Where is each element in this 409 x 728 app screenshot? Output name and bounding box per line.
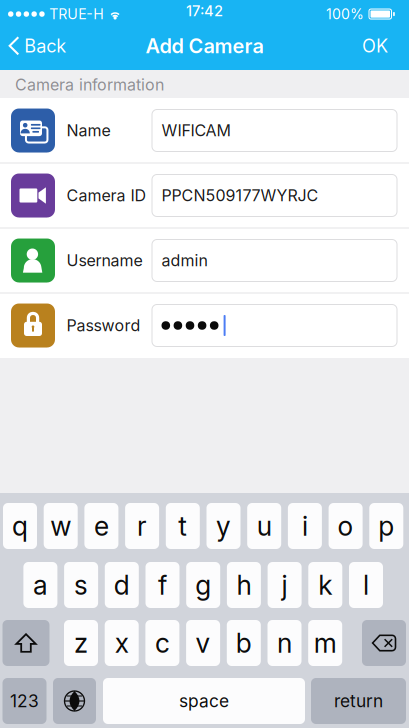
- staticText: h: [236, 569, 251, 601]
- staticText: 100%: [326, 5, 364, 23]
- staticText: m: [314, 627, 337, 659]
- staticText: return: [334, 690, 383, 711]
- staticText: r: [137, 510, 147, 542]
- button[interactable]: y: [206, 503, 240, 549]
- staticText: e: [94, 510, 109, 542]
- staticText: k: [318, 569, 332, 601]
- button[interactable]: m: [308, 620, 342, 666]
- button[interactable]: q: [3, 503, 37, 549]
- button[interactable]: g: [186, 562, 220, 608]
- staticText: 123: [10, 690, 39, 711]
- button[interactable]: t: [166, 503, 200, 549]
- button[interactable]: p: [369, 503, 403, 549]
- button[interactable]: return: [311, 678, 406, 724]
- button[interactable]: o: [329, 503, 363, 549]
- staticText: i: [302, 510, 308, 542]
- staticText: OK: [362, 35, 388, 57]
- staticText: w: [50, 510, 71, 542]
- staticText: d: [114, 569, 130, 601]
- button[interactable]: b: [227, 620, 261, 666]
- button[interactable]: WIFICAM: [0, 98, 409, 163]
- staticText: u: [257, 510, 272, 542]
- staticText: admin: [161, 251, 207, 270]
- staticText: 17:42: [186, 2, 223, 20]
- button[interactable]: s: [64, 562, 98, 608]
- staticText: n: [277, 627, 292, 659]
- staticText: y: [216, 510, 231, 542]
- button[interactable]: l: [349, 562, 383, 608]
- staticText: q: [12, 510, 28, 542]
- staticText: WIFICAM: [161, 121, 230, 140]
- staticText: l: [363, 569, 369, 601]
- button[interactable]: c: [145, 620, 179, 666]
- staticText: Back: [24, 35, 66, 57]
- button[interactable]: Password: [0, 293, 409, 358]
- button[interactable]: k: [308, 562, 342, 608]
- staticText: Camera ID: [66, 186, 146, 205]
- button[interactable]: space: [103, 678, 305, 724]
- staticText: b: [236, 627, 252, 659]
- button[interactable]: Shift: [2, 620, 49, 666]
- button[interactable]: Delete: [362, 620, 406, 666]
- staticText: Username: [66, 251, 142, 270]
- button[interactable]: h: [227, 562, 261, 608]
- staticText: Add Camera: [145, 34, 263, 58]
- button[interactable]: f: [145, 562, 179, 608]
- button[interactable]: r: [125, 503, 159, 549]
- button[interactable]: d: [105, 562, 139, 608]
- staticText: s: [74, 569, 88, 601]
- staticText: TRUE-H: [49, 5, 104, 23]
- button[interactable]: x: [105, 620, 139, 666]
- staticText: f: [158, 569, 167, 601]
- button[interactable]: Back: [0, 22, 74, 70]
- staticText: z: [74, 627, 88, 659]
- staticText: space: [179, 690, 229, 711]
- staticText: Camera information: [15, 75, 164, 94]
- button[interactable]: PPCN509177WYRJC: [0, 163, 409, 228]
- staticText: PPCN509177WYRJC: [161, 186, 318, 205]
- button[interactable]: i: [288, 503, 322, 549]
- button[interactable]: Next keyboard: [53, 678, 96, 724]
- staticText: Name: [66, 121, 110, 140]
- staticText: g: [195, 569, 211, 601]
- staticText: c: [155, 627, 170, 659]
- button[interactable]: v: [186, 620, 220, 666]
- button[interactable]: u: [247, 503, 281, 549]
- button[interactable]: j: [268, 562, 302, 608]
- button[interactable]: 123: [2, 678, 46, 724]
- staticText: Password: [66, 316, 140, 335]
- staticText: x: [115, 627, 129, 659]
- button[interactable]: OK: [345, 22, 405, 70]
- staticText: v: [196, 627, 211, 659]
- button[interactable]: e: [84, 503, 118, 549]
- staticText: p: [378, 510, 394, 542]
- button[interactable]: z: [64, 620, 98, 666]
- staticText: a: [33, 569, 48, 601]
- staticText: t: [178, 510, 187, 542]
- staticText: j: [282, 569, 288, 601]
- button[interactable]: n: [267, 620, 301, 666]
- staticText: o: [338, 510, 354, 542]
- button[interactable]: a: [23, 562, 57, 608]
- button[interactable]: admin: [0, 228, 409, 293]
- button[interactable]: w: [44, 503, 78, 549]
